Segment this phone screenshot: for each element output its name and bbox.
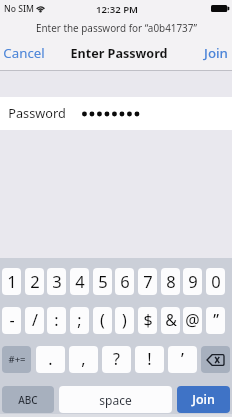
staticText: ’ — [181, 348, 184, 370]
staticText: 4 — [75, 270, 85, 292]
staticText: / — [32, 309, 38, 331]
button[interactable]: 6 — [115, 268, 134, 295]
staticText: Cancel — [3, 44, 45, 62]
staticText: : — [54, 309, 59, 331]
staticText: Join — [204, 44, 228, 62]
button[interactable]: 1 — [2, 268, 21, 295]
staticText: ! — [147, 348, 152, 370]
button[interactable]: ’ — [168, 346, 197, 373]
staticText: 3 — [52, 270, 62, 292]
staticText: 7 — [143, 270, 153, 292]
staticText: ; — [77, 309, 82, 331]
button[interactable]: Join — [204, 44, 228, 62]
staticText: - — [9, 309, 15, 331]
staticText: Enter the password for “a0b41737” — [36, 21, 197, 34]
button[interactable]: ( — [93, 307, 112, 334]
button[interactable]: $ — [138, 307, 157, 334]
button[interactable]: Password — [0, 97, 232, 130]
button[interactable]: 8 — [161, 268, 180, 295]
staticText: 5 — [98, 270, 108, 292]
button[interactable]: 5 — [93, 268, 112, 295]
button[interactable]: #+= — [2, 346, 31, 373]
button[interactable]: ? — [102, 346, 131, 373]
button[interactable]: 0 — [206, 268, 225, 295]
staticText: & — [165, 309, 177, 331]
staticText: #+= — [8, 353, 26, 366]
button[interactable]: 9 — [183, 268, 202, 295]
button[interactable]: ” — [206, 307, 225, 334]
staticText: ( — [100, 309, 105, 331]
button[interactable]: . — [36, 346, 65, 373]
staticText: No SIM — [4, 3, 34, 15]
button[interactable]: Cancel — [3, 44, 45, 62]
button[interactable]: ABC — [2, 386, 54, 413]
staticText: 2 — [30, 270, 40, 292]
button[interactable]: : — [47, 307, 66, 334]
button[interactable]: @ — [183, 307, 202, 334]
staticText: . — [48, 348, 53, 370]
staticText: $ — [143, 309, 153, 331]
staticText: Enter Password — [70, 45, 168, 62]
staticText: Join — [192, 391, 215, 408]
button[interactable]: space — [59, 386, 172, 413]
staticText: 0 — [211, 270, 221, 292]
button[interactable]: ) — [115, 307, 134, 334]
button[interactable]: 3 — [47, 268, 66, 295]
staticText: ” — [213, 309, 219, 331]
button[interactable]: ! — [135, 346, 164, 373]
staticText: , — [81, 348, 86, 370]
button[interactable]: Join — [177, 386, 230, 413]
staticText: @ — [185, 309, 200, 331]
staticText: 1 — [7, 270, 17, 292]
button[interactable]: 7 — [138, 268, 157, 295]
staticText: Password — [8, 104, 66, 121]
staticText: ) — [122, 309, 127, 331]
button[interactable]: Delete — [201, 346, 230, 373]
staticText: ABC — [18, 393, 38, 407]
button[interactable]: & — [161, 307, 180, 334]
staticText: 8 — [166, 270, 176, 292]
button[interactable]: , — [69, 346, 98, 373]
button[interactable]: 4 — [70, 268, 89, 295]
button[interactable]: / — [25, 307, 44, 334]
staticText: 6 — [120, 270, 130, 292]
staticText: space — [99, 392, 132, 408]
button[interactable]: ; — [70, 307, 89, 334]
button[interactable]: 2 — [25, 268, 44, 295]
button[interactable]: - — [2, 307, 21, 334]
staticText: 9 — [188, 270, 198, 292]
staticText: ? — [113, 348, 120, 370]
staticText: 12:32 PM — [96, 3, 138, 16]
